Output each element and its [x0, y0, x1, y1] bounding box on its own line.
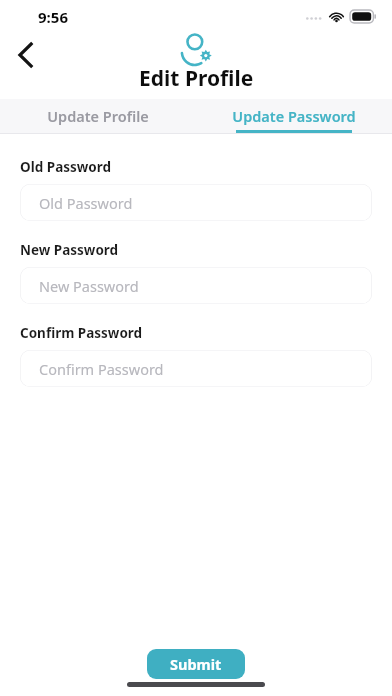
button[interactable]: New Password [20, 267, 372, 304]
staticText: New Password [20, 241, 119, 259]
staticText: Submit [170, 654, 222, 674]
button[interactable]: Submit [147, 649, 245, 679]
staticText: Confirm Password [20, 324, 143, 342]
button[interactable]: Confirm Password [20, 350, 372, 387]
staticText: Confirm Password [39, 359, 164, 379]
button[interactable]: Back [6, 35, 46, 75]
button[interactable]: Update Password [196, 99, 392, 133]
staticText: Edit Profile [139, 64, 254, 93]
staticText: Update Password [232, 106, 356, 126]
staticText: Old Password [20, 158, 112, 176]
button[interactable]: Update Profile [0, 99, 196, 133]
staticText: 9:56 [38, 7, 68, 27]
staticText: New Password [39, 276, 139, 296]
staticText: Old Password [39, 193, 133, 213]
button[interactable]: Old Password [20, 184, 372, 221]
staticText: Update Profile [47, 106, 149, 126]
